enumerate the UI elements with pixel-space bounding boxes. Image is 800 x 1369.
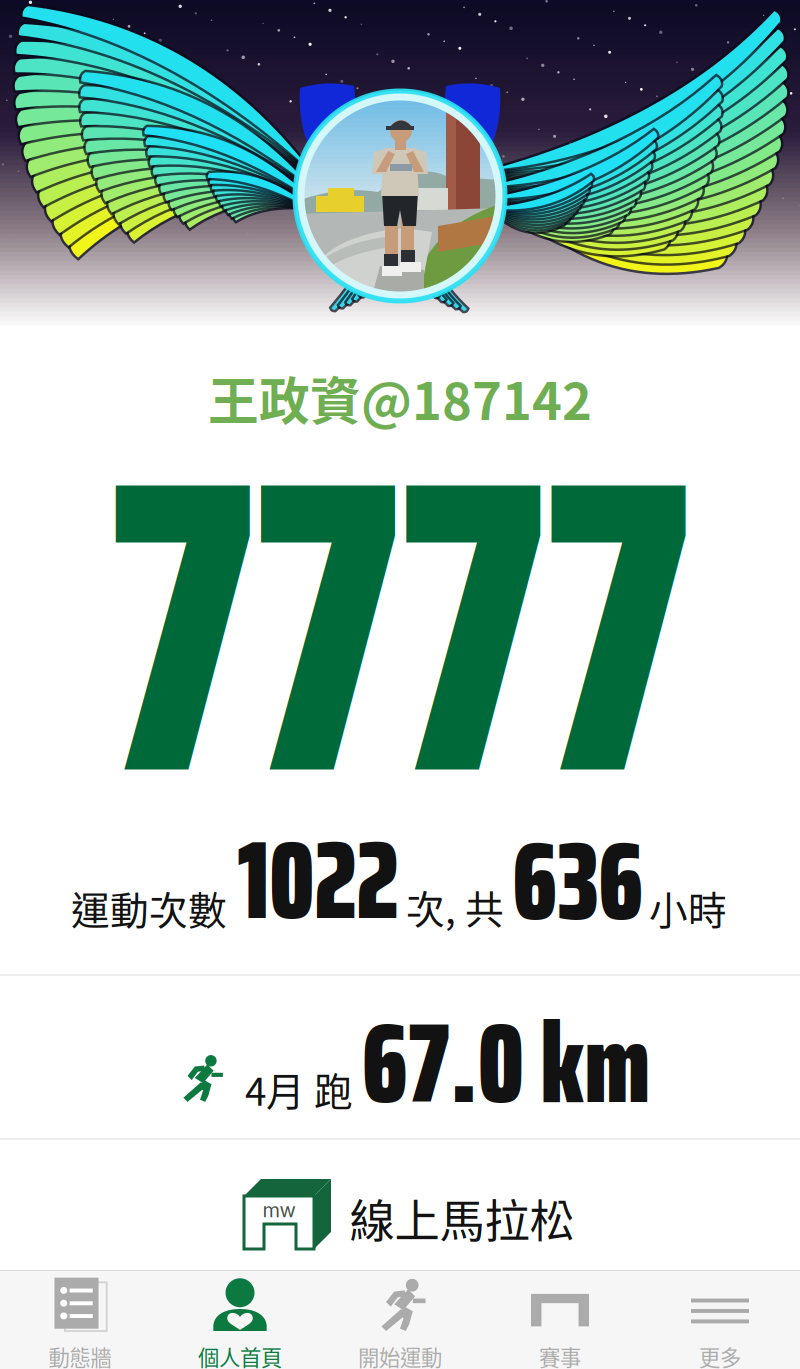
staticText: mw bbox=[262, 1198, 295, 1222]
staticText: 636 bbox=[512, 795, 643, 967]
button[interactable]: 開始運動 bbox=[320, 1270, 480, 1369]
staticText: 開始運動 bbox=[358, 1341, 442, 1369]
staticText: 7777 bbox=[92, 302, 708, 950]
staticText: 次, 共 bbox=[406, 879, 504, 935]
button[interactable]: 動態牆 bbox=[0, 1270, 160, 1369]
staticText: 1022 bbox=[237, 794, 398, 966]
button[interactable]: 賽事 bbox=[480, 1270, 640, 1369]
staticText: 小時 bbox=[649, 880, 727, 936]
staticText: 賽事 bbox=[539, 1341, 581, 1369]
staticText: 線上馬拉松 bbox=[349, 1185, 574, 1251]
staticText: 更多 bbox=[699, 1341, 741, 1369]
button[interactable]: 個人首頁 bbox=[160, 1270, 320, 1369]
staticText: 動態牆 bbox=[48, 1341, 111, 1369]
staticText: 個人首頁 bbox=[198, 1341, 282, 1369]
button[interactable]: 更多 bbox=[640, 1270, 800, 1369]
staticText: 67.0 km bbox=[362, 975, 650, 1151]
staticText: 王政資@187142 bbox=[208, 361, 592, 435]
staticText: 4月 跑 bbox=[245, 1061, 353, 1117]
staticText: 運動次數 bbox=[71, 880, 227, 936]
